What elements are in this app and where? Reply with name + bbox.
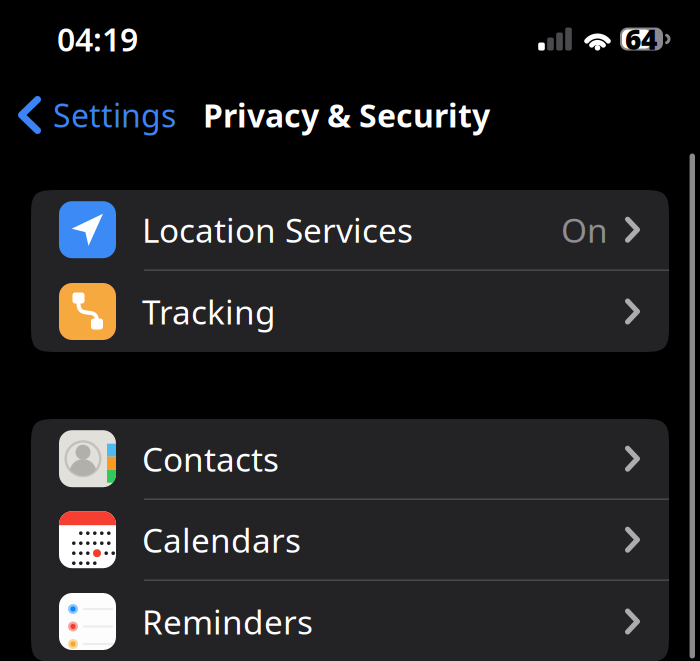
button[interactable]: Tracking <box>31 271 669 352</box>
button[interactable]: Calendars <box>31 500 669 581</box>
staticText: Privacy & Security <box>203 94 490 136</box>
button[interactable]: Contacts <box>31 419 669 500</box>
button[interactable]: Location Services <box>31 190 669 271</box>
staticText: On <box>561 208 608 252</box>
staticText: Contacts <box>142 437 279 481</box>
button[interactable]: Settings <box>0 85 176 145</box>
button[interactable]: Privacy & Security <box>176 85 490 145</box>
staticText: 04:19 <box>57 18 138 60</box>
staticText: Settings <box>53 94 176 136</box>
staticText: Calendars <box>142 518 301 562</box>
staticText: Reminders <box>142 599 313 644</box>
button[interactable]: Reminders <box>31 581 669 661</box>
staticText: Location Services <box>142 208 413 252</box>
staticText: Tracking <box>142 289 276 334</box>
staticText: 64 <box>625 20 657 58</box>
